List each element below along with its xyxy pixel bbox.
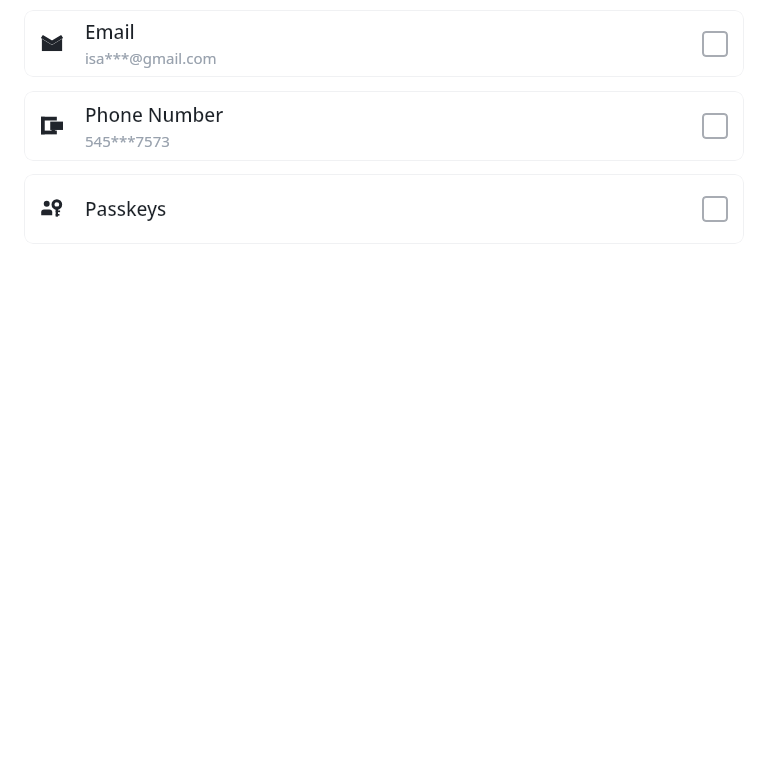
button[interactable]: Select Passkeys — [702, 196, 728, 222]
staticText: Passkeys — [85, 196, 167, 222]
button[interactable]: Select Email — [702, 31, 728, 57]
button[interactable]: Select Phone Number — [702, 113, 728, 139]
button[interactable]: Passkeys — [24, 174, 744, 244]
button[interactable]: Email — [24, 10, 744, 77]
button[interactable]: Phone Number — [24, 91, 744, 161]
staticText: isa***@gmail.com — [85, 48, 217, 68]
staticText: Phone Number — [85, 102, 224, 128]
staticText: 545***7573 — [85, 131, 170, 151]
staticText: Email — [85, 19, 135, 45]
